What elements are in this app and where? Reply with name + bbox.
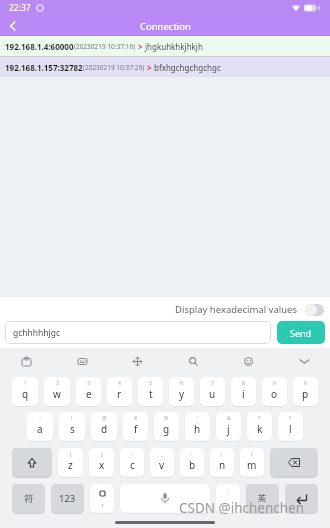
button[interactable]: ? (278, 412, 303, 442)
button[interactable]: ) (89, 448, 114, 478)
staticText: ( (70, 451, 72, 458)
staticText: u (209, 387, 216, 401)
staticText: p (302, 387, 309, 401)
button[interactable]: ~ (27, 412, 53, 442)
button[interactable]: & (216, 412, 241, 442)
button[interactable] (73, 352, 91, 370)
button[interactable] (17, 352, 35, 370)
button[interactable]: ( (58, 448, 83, 478)
staticText: # (134, 415, 138, 422)
button[interactable] (128, 352, 146, 370)
staticText: 0 (304, 380, 307, 387)
staticText: * (258, 415, 261, 422)
button[interactable] (295, 352, 313, 370)
staticText: 192.168.1.157:32782 (5, 62, 83, 73)
staticText: w (53, 387, 61, 401)
button[interactable] (285, 484, 318, 514)
button[interactable]: 英 (246, 484, 279, 514)
staticText: 2 (56, 380, 59, 387)
staticText: 192.168.1.4:60000 (5, 41, 74, 52)
staticText: o (271, 387, 278, 401)
button[interactable]: 4 (107, 377, 132, 407)
staticText: a (37, 422, 43, 436)
button[interactable]: 192.168.1.4:60000 (5, 36, 330, 56)
staticText: : (191, 451, 193, 458)
button[interactable]: # (123, 412, 148, 442)
staticText: CSDN @ihchenchen (179, 499, 305, 517)
staticText: gchhhhhjgc (13, 327, 61, 339)
button[interactable]: : (216, 484, 240, 514)
button[interactable] (184, 352, 202, 370)
staticText: ) (101, 451, 103, 458)
button[interactable]: ; (210, 448, 234, 478)
staticText: x (99, 458, 105, 472)
staticText: g (163, 422, 170, 436)
button[interactable]: , (90, 484, 114, 514)
button[interactable]: 3 (76, 377, 101, 407)
button[interactable]: 1 (12, 377, 38, 407)
staticText: b (189, 458, 196, 472)
staticText: ! (71, 415, 73, 422)
staticText: y (179, 387, 185, 401)
button[interactable]: gchhhhhjgc (5, 321, 271, 344)
button[interactable]: _ (150, 448, 174, 478)
staticText: z (68, 458, 73, 472)
button[interactable]: 符 (12, 484, 45, 514)
staticText: / (251, 451, 253, 458)
staticText: 符 (24, 493, 34, 505)
button[interactable]: 9 (262, 377, 287, 407)
staticText: 9 (273, 380, 276, 387)
staticText: & (227, 415, 231, 422)
staticText: Send (290, 327, 312, 339)
button[interactable] (12, 448, 52, 478)
staticText: ~ (39, 415, 42, 422)
button[interactable] (6, 19, 20, 33)
staticText: v (159, 458, 165, 472)
button[interactable] (270, 448, 318, 478)
button[interactable]: 5 (138, 377, 163, 407)
staticText: , (102, 498, 104, 507)
button[interactable]: 192.168.1.157:32782 (5, 57, 330, 77)
staticText: 7 (211, 380, 214, 387)
staticText: bfxhgchgchgchgc (154, 62, 221, 73)
button[interactable]: @ (91, 412, 117, 442)
button[interactable]: 2 (44, 377, 70, 407)
button[interactable]: 6 (169, 377, 194, 407)
staticText: l (289, 422, 292, 436)
staticText: 4 (118, 380, 121, 387)
button[interactable]: Send (277, 321, 325, 344)
staticText: 8 (242, 380, 245, 387)
staticText: > (145, 62, 154, 73)
staticText: 英 (258, 493, 267, 504)
button[interactable] (239, 352, 257, 370)
button[interactable]: - (120, 448, 144, 478)
staticText: ? (289, 415, 292, 422)
staticText: (20230219 10:37:29) (83, 63, 145, 72)
staticText: 6 (180, 380, 183, 387)
button[interactable] (305, 304, 324, 316)
button[interactable]: 8 (231, 377, 256, 407)
button[interactable]: ' (185, 412, 210, 442)
button[interactable]: 123 (51, 484, 84, 514)
staticText: - (131, 451, 133, 458)
staticText: t (149, 387, 153, 401)
staticText: i (242, 387, 245, 401)
staticText: j (227, 422, 230, 436)
staticText: n (219, 458, 226, 472)
staticText: _ (161, 451, 164, 458)
button[interactable]: * (247, 412, 272, 442)
button[interactable] (120, 484, 210, 514)
button[interactable]: ! (59, 412, 85, 442)
staticText: 1 (24, 380, 27, 387)
staticText: k (257, 422, 263, 436)
button[interactable]: 0 (293, 377, 318, 407)
staticText: ; (221, 451, 223, 458)
button[interactable]: % (154, 412, 179, 442)
staticText: (20230219 10:37:16) (74, 42, 136, 51)
staticText: % (164, 415, 169, 422)
staticText: . (227, 497, 230, 508)
button[interactable]: : (180, 448, 204, 478)
button[interactable]: 7 (200, 377, 225, 407)
staticText: > (136, 41, 145, 52)
button[interactable]: / (240, 448, 264, 478)
